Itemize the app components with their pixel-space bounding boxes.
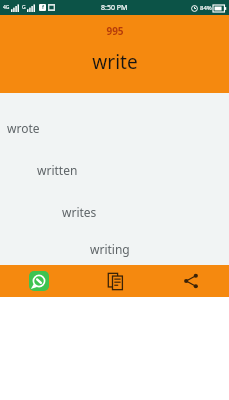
staticText: 4G xyxy=(3,4,10,11)
staticText: written xyxy=(37,162,78,178)
button[interactable]: written xyxy=(0,149,229,191)
staticText: f xyxy=(42,4,44,11)
staticText: writes xyxy=(62,204,97,220)
button[interactable]: Share xyxy=(153,265,229,297)
button[interactable]: Share on WhatsApp xyxy=(0,265,77,297)
staticText: 995 xyxy=(106,24,124,38)
staticText: G xyxy=(22,4,26,11)
button[interactable]: Copy xyxy=(77,265,153,297)
staticText: wrote xyxy=(7,120,40,136)
staticText: writing xyxy=(90,241,130,257)
staticText: write xyxy=(92,49,138,75)
staticText: 8:50 PM xyxy=(101,3,128,13)
button[interactable]: writing xyxy=(0,233,229,265)
staticText: 84% xyxy=(200,4,212,12)
button[interactable]: wrote xyxy=(0,107,229,149)
button[interactable]: writes xyxy=(0,191,229,233)
